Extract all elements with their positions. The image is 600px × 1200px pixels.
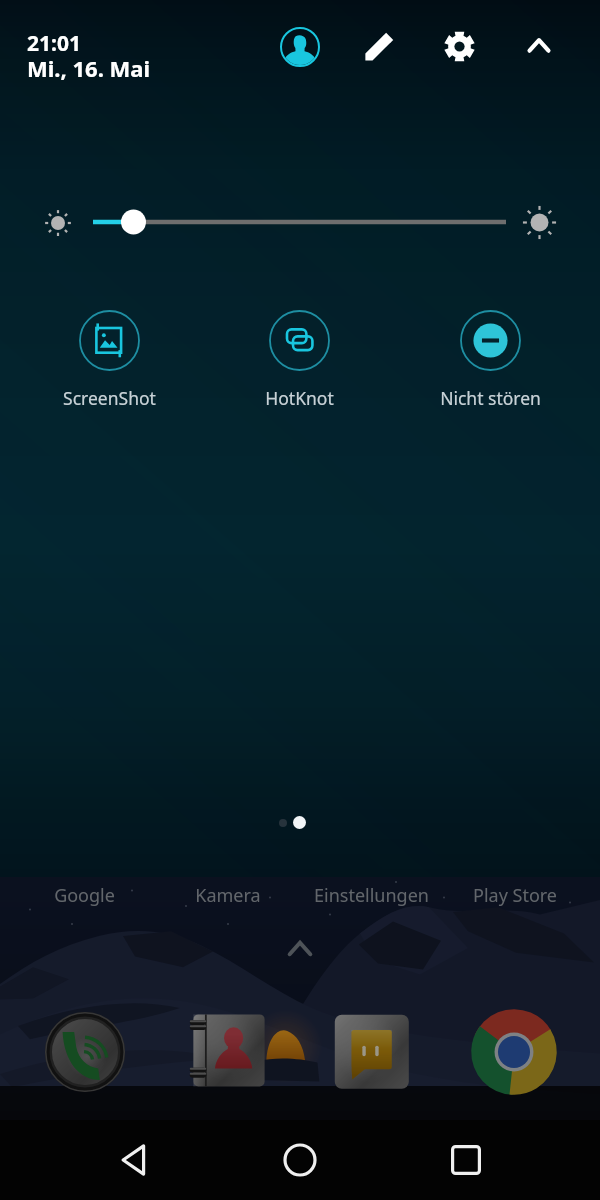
- staticText: 21:01: [27, 29, 81, 58]
- button[interactable]: Contacts: [179, 1002, 279, 1102]
- staticText: Einstellungen: [314, 883, 429, 908]
- button[interactable]: Home: [260, 1120, 340, 1200]
- button[interactable]: Decrease brightness: [35, 200, 80, 245]
- button[interactable]: Recent apps: [426, 1120, 506, 1200]
- staticText: Nicht stören: [440, 386, 541, 410]
- button[interactable]: Increase brightness: [517, 200, 562, 245]
- staticText: Play Store: [473, 883, 557, 908]
- staticText: Mi., 16. Mai: [27, 53, 151, 83]
- button[interactable]: Brightness: [88, 201, 512, 243]
- staticText: ScreenShot: [63, 386, 156, 410]
- button[interactable]: Chrome: [464, 1002, 564, 1102]
- button[interactable]: Kamera: [156, 880, 300, 910]
- button[interactable]: Open app drawer: [280, 928, 320, 968]
- button[interactable]: Back: [94, 1120, 174, 1200]
- button[interactable]: Einstellungen: [299, 880, 443, 910]
- button[interactable]: Edit: [352, 18, 408, 74]
- staticText: Kamera: [195, 883, 261, 908]
- button[interactable]: Messaging: [322, 1002, 422, 1102]
- button[interactable]: Play Store: [443, 880, 587, 910]
- button[interactable]: Collapse panel: [511, 17, 567, 73]
- staticText: HotKnot: [265, 386, 334, 410]
- button[interactable]: Settings: [431, 18, 487, 74]
- button[interactable]: ScreenShot: [37, 310, 181, 410]
- button[interactable]: Google: [12, 880, 156, 910]
- button[interactable]: User profile: [272, 19, 328, 75]
- button[interactable]: Phone: [35, 1002, 135, 1102]
- staticText: Google: [54, 883, 115, 908]
- button[interactable]: Nicht stören: [418, 310, 562, 410]
- button[interactable]: HotKnot: [227, 310, 371, 410]
